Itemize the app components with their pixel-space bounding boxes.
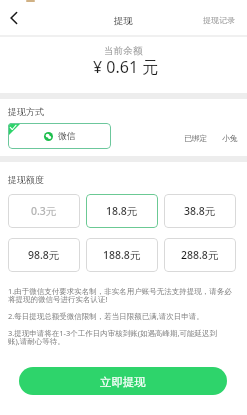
staticText: 提现方式 bbox=[8, 106, 44, 117]
button[interactable]: 立即提现 bbox=[19, 367, 227, 395]
button[interactable]: 188.8元 bbox=[86, 238, 158, 272]
staticText: 账),请耐心等待。 bbox=[8, 336, 65, 346]
button[interactable]: 提现记录 bbox=[203, 7, 236, 29]
staticText: 小兔 bbox=[222, 133, 238, 143]
staticText: 提现额度 bbox=[8, 174, 44, 185]
staticText: 3.提现申请将在1-3个工作日内审核到账(如遇高峰期,可能延迟到 bbox=[8, 328, 218, 338]
staticText: 98.8元 bbox=[28, 248, 60, 262]
staticText: 0.3元 bbox=[31, 204, 57, 218]
staticText: 当前余额 bbox=[104, 45, 143, 57]
staticText: 288.8元 bbox=[181, 248, 219, 262]
staticText: 立即提现 bbox=[100, 375, 146, 389]
button[interactable]: 98.8元 bbox=[8, 238, 80, 272]
staticText: 1.由于微信支付要求实名制，非实名用户账号无法支持提现，请务必 bbox=[8, 286, 232, 296]
staticText: 188.8元 bbox=[103, 248, 141, 262]
staticText: 微信 bbox=[58, 131, 76, 142]
button[interactable]: 288.8元 bbox=[164, 238, 236, 272]
button[interactable]: 0.3元 bbox=[8, 194, 80, 228]
button[interactable]: 38.8元 bbox=[164, 194, 236, 228]
staticText: 将提现的微信号进行实名认证! bbox=[8, 294, 108, 304]
staticText: ¥ 0.61 元 bbox=[93, 56, 159, 78]
button[interactable]: 微信 bbox=[8, 123, 111, 149]
staticText: 提现 bbox=[114, 15, 133, 27]
staticText: 2.每日提现总额受微信限制，若当日限额已满,请次日申请。 bbox=[8, 311, 204, 321]
button[interactable]: Back bbox=[3, 7, 25, 29]
staticText: 18.8元 bbox=[106, 204, 138, 218]
staticText: 38.8元 bbox=[184, 204, 216, 218]
staticText: 提现记录 bbox=[203, 15, 236, 25]
staticText: 已绑定 bbox=[184, 133, 208, 143]
button[interactable]: 18.8元 bbox=[86, 194, 158, 228]
